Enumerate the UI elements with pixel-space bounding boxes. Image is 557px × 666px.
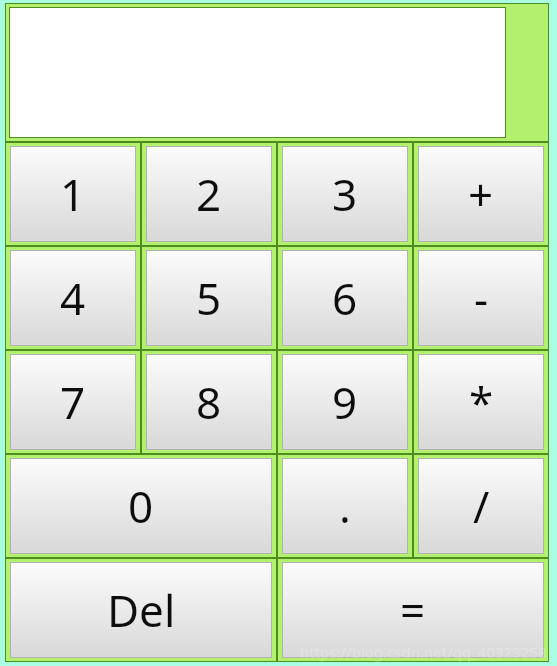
button[interactable]: Del	[10, 562, 272, 658]
button[interactable]: 8	[146, 354, 272, 450]
staticText: 2	[196, 164, 222, 224]
staticText: 7	[60, 372, 86, 432]
button[interactable]: 9	[282, 354, 408, 450]
staticText: 9	[332, 372, 358, 432]
staticText: 4	[60, 268, 86, 328]
staticText: https://blog.csdn.net/qq_40323258	[300, 642, 547, 662]
staticText: 6	[332, 268, 358, 328]
button[interactable]: =	[282, 562, 544, 658]
button[interactable]: 2	[146, 146, 272, 242]
button[interactable]	[9, 7, 506, 138]
staticText: 0	[128, 476, 154, 536]
staticText: 8	[196, 372, 222, 432]
staticText: .	[339, 476, 351, 536]
staticText: /	[473, 476, 490, 536]
staticText: 3	[332, 164, 358, 224]
button[interactable]: 5	[146, 250, 272, 346]
button[interactable]: 1	[10, 146, 136, 242]
button[interactable]: .	[282, 458, 408, 554]
staticText: 5	[196, 268, 222, 328]
staticText: =	[400, 580, 426, 640]
button[interactable]: *	[418, 354, 544, 450]
button[interactable]: 4	[10, 250, 136, 346]
button[interactable]: 0	[10, 458, 272, 554]
button[interactable]: /	[418, 458, 544, 554]
staticText: -	[474, 268, 489, 328]
button[interactable]: -	[418, 250, 544, 346]
staticText: 1	[60, 164, 86, 224]
button[interactable]: +	[418, 146, 544, 242]
staticText: +	[468, 164, 494, 224]
button[interactable]: 6	[282, 250, 408, 346]
button[interactable]: 7	[10, 354, 136, 450]
staticText: *	[469, 372, 494, 432]
staticText: Del	[107, 580, 176, 640]
button[interactable]: 3	[282, 146, 408, 242]
